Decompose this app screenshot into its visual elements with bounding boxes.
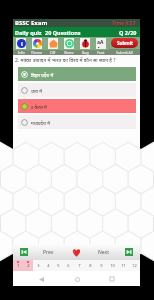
button[interactable]: x केरल में [18, 99, 136, 113]
staticText: aAA [97, 39, 106, 48]
button[interactable]: Info [13, 37, 29, 55]
staticText: 2. मक्का उत्पादन में भारत का विश्व में क… [15, 57, 116, 64]
staticText: Time 9:57 [112, 20, 136, 27]
staticText: 20 Questions [45, 29, 81, 36]
button[interactable]: First page [13, 244, 35, 260]
button[interactable]: Recents [105, 272, 119, 286]
button[interactable]: Prev [35, 244, 62, 260]
staticText: 12 [132, 263, 137, 268]
staticText: 6 [67, 263, 70, 268]
button[interactable]: Back [34, 272, 48, 286]
staticText: Theme [31, 50, 43, 55]
staticText: Submit All [116, 50, 133, 55]
staticText: 7 [78, 263, 81, 268]
staticText: Submit [117, 40, 133, 46]
button[interactable]: 7 [74, 260, 85, 271]
staticText: बिहार प्रदेश में [31, 72, 54, 78]
staticText: 4 [47, 263, 50, 268]
staticText: Daily quiz [15, 29, 42, 36]
button[interactable]: मध्यप्रदेश में [18, 115, 136, 129]
staticText: Next [98, 249, 109, 256]
button[interactable]: Theme [29, 37, 45, 55]
button[interactable]: 1 [13, 260, 23, 271]
button[interactable]: Share [61, 37, 77, 55]
staticText: Share [64, 50, 74, 55]
button[interactable]: 10 [107, 260, 118, 271]
staticText: 8 [89, 263, 92, 268]
button[interactable]: 2 [23, 260, 33, 271]
button[interactable]: 4 [43, 260, 53, 271]
button[interactable]: 5 [53, 260, 63, 271]
staticText: i [21, 40, 23, 48]
button[interactable]: 12 [129, 260, 140, 271]
staticText: 2 [27, 263, 30, 268]
button[interactable]: 11 [118, 260, 129, 271]
button[interactable]: Font [93, 37, 109, 55]
staticText: 10 [110, 263, 115, 268]
button[interactable]: 8 [85, 260, 96, 271]
staticText: Bug [82, 50, 89, 55]
staticText: 11 [121, 263, 126, 268]
staticText: BSSC Exam [15, 19, 48, 27]
button[interactable]: चारा में [18, 83, 136, 97]
staticText: Off [50, 50, 56, 55]
staticText: x केरल में [31, 104, 47, 110]
button[interactable]: Off [45, 37, 61, 55]
staticText: 1 [17, 263, 20, 268]
button[interactable]: 9 [96, 260, 107, 271]
button[interactable]: Favourite [62, 244, 90, 260]
button[interactable]: Home [70, 272, 84, 286]
button[interactable]: Bug [77, 37, 93, 55]
staticText: चारा में [31, 88, 42, 94]
button[interactable]: Last page [117, 244, 140, 260]
button[interactable]: 6 [63, 260, 74, 271]
staticText: Q 2/20 [119, 29, 137, 36]
staticText: 9 [100, 263, 103, 268]
staticText: मध्यप्रदेश में [31, 120, 50, 126]
button[interactable]: Submit [109, 37, 140, 55]
staticText: Font [97, 50, 105, 55]
staticText: Info [18, 50, 25, 55]
button[interactable]: Next [90, 244, 117, 260]
button[interactable]: 3 [33, 260, 43, 271]
button[interactable]: बिहार प्रदेश में [18, 67, 136, 81]
staticText: 5 [57, 263, 60, 268]
staticText: Prev [43, 249, 54, 256]
staticText: 3 [37, 263, 40, 268]
